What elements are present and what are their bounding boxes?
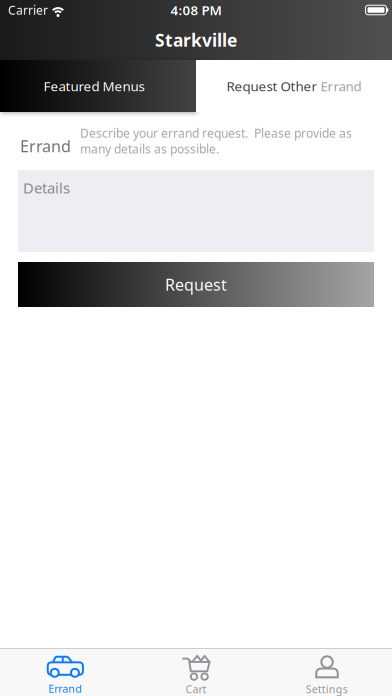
button[interactable]: Request Other — [196, 60, 392, 112]
button[interactable]: Settings — [261, 649, 392, 696]
button[interactable]: Errand — [0, 649, 131, 696]
button[interactable]: Request — [18, 262, 374, 307]
staticText: Details — [23, 178, 70, 197]
staticText: Errand — [48, 681, 82, 696]
staticText: Errand — [320, 77, 361, 95]
staticText: Carrier — [8, 2, 48, 18]
staticText: Request — [165, 274, 227, 295]
button[interactable]: Details — [18, 170, 374, 252]
staticText: Describe your errand request. Please pro… — [80, 125, 352, 157]
staticText: Cart — [185, 682, 206, 696]
button[interactable]: Featured Menus — [0, 60, 196, 112]
staticText: Featured Menus — [43, 77, 144, 95]
staticText: 4:08 PM — [170, 1, 221, 19]
staticText: Request Other — [226, 77, 320, 95]
staticText: Settings — [306, 682, 348, 696]
button[interactable]: Errand — [0, 112, 392, 170]
button[interactable]: Cart — [131, 649, 261, 696]
staticText: Errand — [20, 135, 71, 157]
staticText: Starkville — [155, 28, 237, 51]
